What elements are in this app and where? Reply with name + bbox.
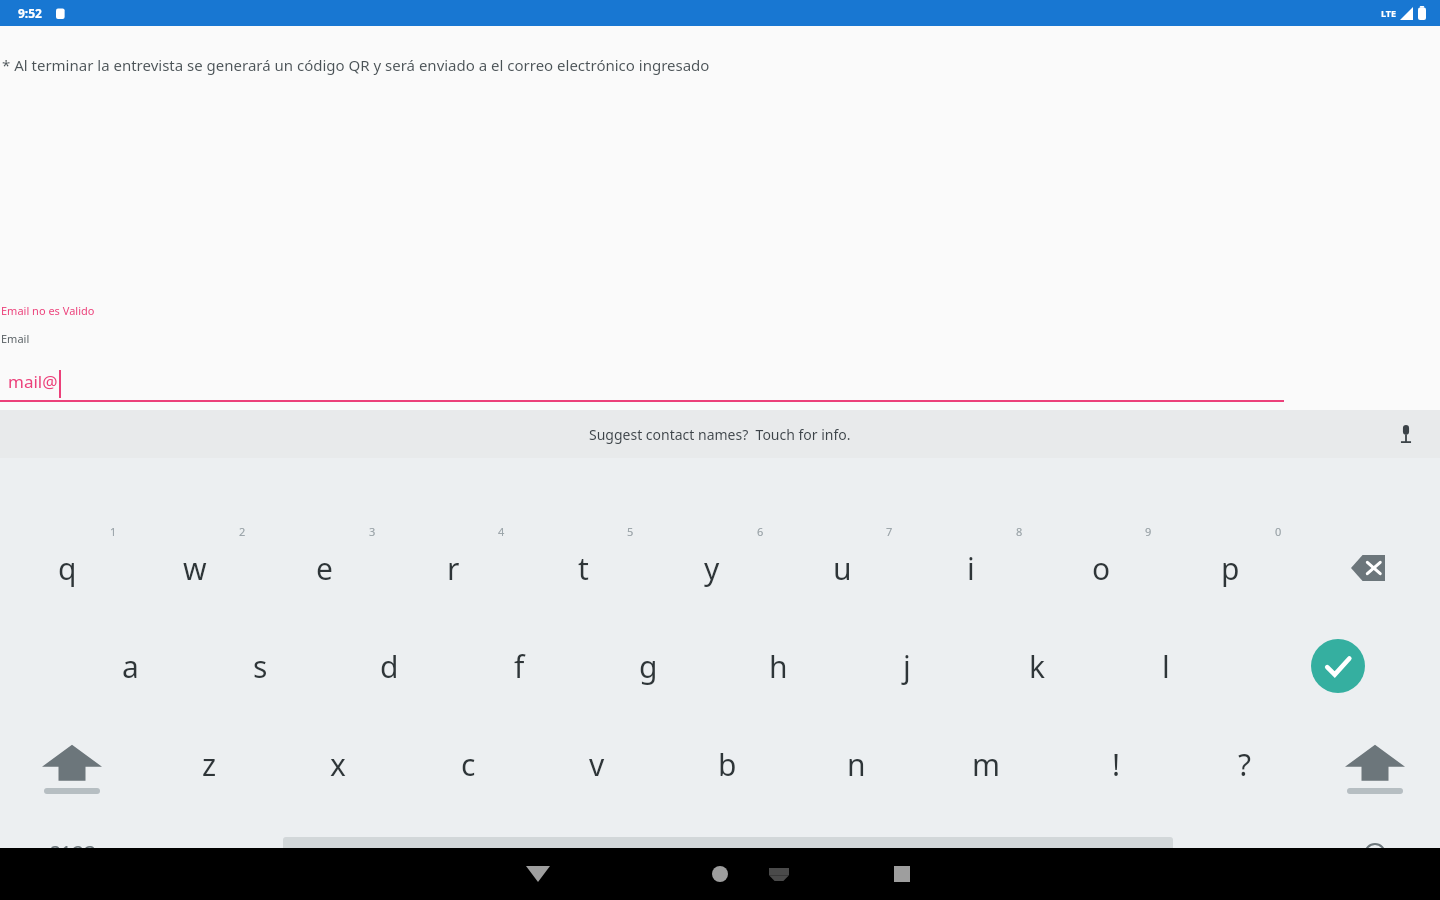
staticText: e <box>316 548 333 589</box>
button[interactable]: Home <box>685 848 755 900</box>
button[interactable]: k <box>979 618 1095 714</box>
button[interactable]: h <box>720 618 836 714</box>
staticText: LTE <box>1381 7 1397 19</box>
staticText: 9 <box>1145 524 1152 539</box>
button[interactable]: f <box>461 618 577 714</box>
staticText: j <box>903 646 911 687</box>
staticText: k <box>1029 646 1046 687</box>
staticText: z <box>202 744 217 785</box>
button[interactable]: d <box>331 618 447 714</box>
button[interactable]: t <box>525 520 641 616</box>
button[interactable]: g <box>590 618 706 714</box>
staticText: 8 <box>1016 524 1023 539</box>
button[interactable]: , <box>152 814 268 894</box>
staticText: c <box>461 744 476 785</box>
button[interactable]: Backspace <box>1310 520 1426 616</box>
staticText: t <box>578 548 589 589</box>
staticText: 6 <box>757 524 764 539</box>
button[interactable]: p <box>1172 520 1288 616</box>
staticText: n <box>847 744 866 785</box>
staticText: h <box>769 646 788 687</box>
staticText: l <box>1162 646 1170 687</box>
button[interactable]: e <box>266 520 382 616</box>
staticText: ? <box>1238 744 1252 785</box>
staticText: p <box>1221 548 1240 589</box>
staticText: b <box>718 744 737 785</box>
staticText: ?123 <box>51 840 97 869</box>
staticText: q <box>58 548 77 589</box>
staticText: v <box>589 744 605 785</box>
button[interactable]: Emoji <box>1317 814 1433 894</box>
button[interactable]: Shift <box>1317 716 1433 812</box>
button[interactable]: i <box>913 520 1029 616</box>
button[interactable]: s <box>202 618 318 714</box>
button[interactable]: j <box>849 618 965 714</box>
button[interactable]: . <box>1186 814 1302 894</box>
button[interactable]: w <box>137 520 253 616</box>
staticText: a <box>122 646 139 687</box>
staticText: w <box>183 548 207 589</box>
staticText: i <box>967 548 975 589</box>
staticText: 2 <box>239 524 246 539</box>
staticText: 1 <box>110 524 117 539</box>
button[interactable]: r <box>395 520 511 616</box>
staticText: 7 <box>886 524 893 539</box>
button[interactable]: x <box>280 716 396 812</box>
staticText: ! <box>1112 744 1121 785</box>
button[interactable]: a <box>72 618 188 714</box>
button[interactable]: u <box>784 520 900 616</box>
staticText: x <box>330 744 346 785</box>
button[interactable]: ? <box>1187 716 1303 812</box>
staticText: Email <box>1 331 30 346</box>
button[interactable]: n <box>798 716 914 812</box>
button[interactable]: ?123 <box>16 814 132 894</box>
button[interactable]: c <box>410 716 526 812</box>
staticText: 5 <box>627 524 634 539</box>
button[interactable]: q <box>9 520 125 616</box>
button[interactable]: b <box>669 716 785 812</box>
staticText: o <box>1092 548 1111 589</box>
button[interactable]: Shift <box>14 716 130 812</box>
staticText: 4 <box>498 524 505 539</box>
button[interactable]: Back <box>498 848 578 900</box>
staticText: m <box>972 744 1001 785</box>
button[interactable]: o <box>1043 520 1159 616</box>
staticText: 3 <box>369 524 376 539</box>
staticText: . <box>1241 837 1248 872</box>
button[interactable]: Recent apps <box>862 848 942 900</box>
button[interactable]: z <box>151 716 267 812</box>
button[interactable]: l <box>1108 618 1224 714</box>
button[interactable]: Hide keyboard <box>752 848 806 900</box>
staticText: g <box>639 646 658 687</box>
staticText: d <box>380 646 399 687</box>
button[interactable]: Voice input <box>1392 420 1420 448</box>
staticText: 0 <box>1275 524 1282 539</box>
staticText: r <box>447 548 460 589</box>
staticText: , <box>207 837 214 872</box>
staticText: y <box>704 548 720 589</box>
staticText: Email no es Valido <box>1 303 95 318</box>
button[interactable]: Space <box>283 837 1173 862</box>
button[interactable]: Suggest contact names? Touch for info. <box>0 410 1440 458</box>
staticText: s <box>253 646 268 687</box>
button[interactable]: v <box>539 716 655 812</box>
button[interactable]: ! <box>1058 716 1174 812</box>
staticText: mail@ <box>8 370 58 393</box>
button[interactable]: mail@ <box>0 360 1284 402</box>
button[interactable]: m <box>928 716 1044 812</box>
staticText: Suggest contact names? Touch for info. <box>589 425 851 444</box>
staticText: f <box>514 646 525 687</box>
button[interactable]: Enter <box>1280 618 1396 714</box>
staticText: 9:52 <box>18 5 42 21</box>
button[interactable]: y <box>654 520 770 616</box>
staticText: u <box>833 548 852 589</box>
staticText: * Al terminar la entrevista se generará … <box>2 55 710 75</box>
